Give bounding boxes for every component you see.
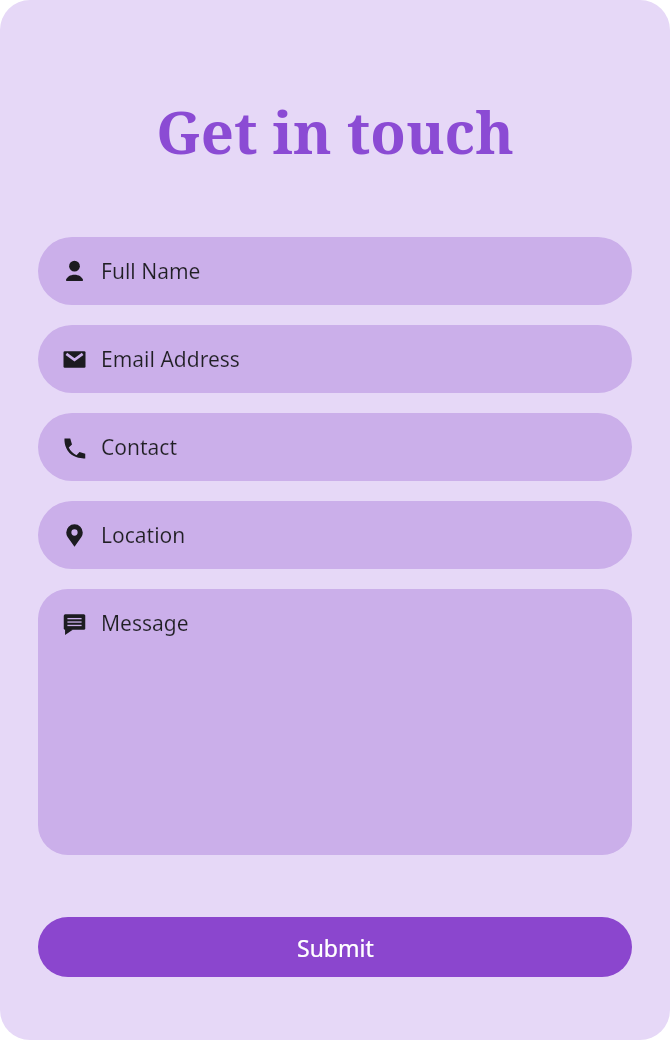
staticText: Location bbox=[101, 521, 186, 550]
button[interactable]: Full Name bbox=[38, 237, 632, 305]
button[interactable]: Message bbox=[38, 589, 632, 855]
staticText: Submit bbox=[297, 932, 374, 963]
staticText: Contact bbox=[101, 433, 177, 462]
button[interactable]: Contact bbox=[38, 413, 632, 481]
button[interactable]: Submit bbox=[38, 917, 632, 977]
staticText: Get in touch bbox=[0, 92, 670, 171]
staticText: Message bbox=[101, 609, 189, 638]
staticText: Email Address bbox=[101, 345, 240, 374]
staticText: Full Name bbox=[101, 257, 201, 286]
button[interactable]: Email Address bbox=[38, 325, 632, 393]
button[interactable]: Location bbox=[38, 501, 632, 569]
